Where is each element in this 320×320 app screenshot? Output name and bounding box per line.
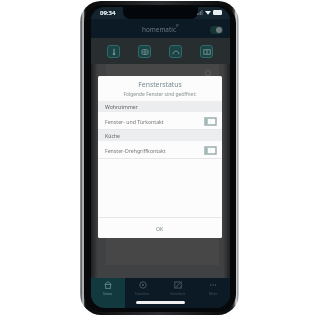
staticText: 09:34 xyxy=(100,9,116,17)
button[interactable]: Mehr xyxy=(195,278,230,308)
button[interactable]: Security xyxy=(138,45,151,58)
staticText: OK xyxy=(156,225,164,232)
staticText: Favoriten xyxy=(135,292,150,296)
button[interactable]: Fenster-Drehgriffkontakt xyxy=(98,141,222,159)
staticText: Status xyxy=(103,292,113,296)
staticText: Folgende Fenster sind geöffnet: xyxy=(98,91,222,98)
button[interactable]: OK xyxy=(98,218,222,238)
staticText: Mehr xyxy=(209,292,217,296)
staticText: Fenster-Drehgriffkontakt xyxy=(105,147,205,154)
button[interactable]: Fenster- und Türkontakt xyxy=(98,112,222,130)
button[interactable]: Shutters xyxy=(169,45,182,58)
staticText: Küche xyxy=(105,132,121,139)
staticText: IP xyxy=(176,24,180,28)
staticText: Sicherheit xyxy=(170,292,185,296)
button[interactable]: Favoriten xyxy=(125,278,160,308)
button[interactable]: Windows xyxy=(200,45,213,58)
button[interactable]: Alarm toggle xyxy=(210,26,223,34)
staticText: homematic xyxy=(142,25,176,34)
staticText: Fenster- und Türkontakt xyxy=(105,118,205,125)
button[interactable]: Sicherheit xyxy=(160,278,195,308)
staticText: Fensterstatus xyxy=(98,80,222,89)
button[interactable]: Status xyxy=(91,278,125,308)
button[interactable]: Climate xyxy=(107,45,120,58)
staticText: Wohnzimmer xyxy=(105,103,138,110)
